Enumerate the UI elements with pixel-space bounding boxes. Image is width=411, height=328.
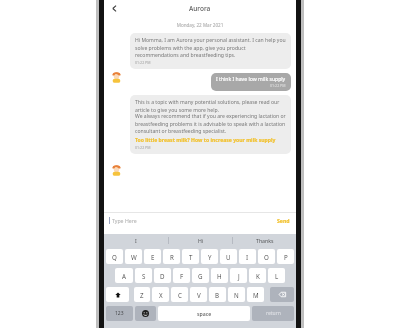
staticText: Hi — [198, 237, 204, 244]
staticText: Type Here — [112, 217, 276, 224]
button[interactable]: Hi Momma, I am Aurora your personal assi… — [130, 33, 291, 69]
staticText: V — [197, 291, 201, 299]
staticText: This is a topic with many potential solu… — [135, 99, 286, 113]
button[interactable]: U — [220, 249, 237, 264]
button[interactable]: This is a topic with many potential solu… — [130, 95, 291, 154]
staticText: F — [180, 272, 184, 280]
button[interactable]: N — [228, 287, 245, 302]
button[interactable]: D — [154, 268, 171, 283]
button[interactable]: Thanks — [233, 234, 296, 247]
staticText: K — [256, 272, 260, 280]
staticText: O — [264, 253, 269, 261]
button[interactable]: Too little breast milk? How to increase … — [135, 137, 276, 144]
button[interactable]: return — [252, 306, 294, 321]
staticText: M — [253, 291, 259, 299]
staticText: Aurora — [189, 4, 211, 13]
button[interactable]: Shift — [106, 287, 129, 302]
button[interactable]: F — [173, 268, 190, 283]
staticText: R — [170, 253, 174, 261]
button[interactable]: I — [104, 234, 168, 247]
staticText: We always recommend that if you are expe… — [135, 113, 286, 134]
button[interactable]: S — [135, 268, 152, 283]
button[interactable]: P — [277, 249, 294, 264]
staticText: G — [198, 272, 203, 280]
staticText: A — [122, 272, 126, 280]
staticText: space — [197, 310, 212, 317]
staticText: I — [246, 253, 249, 261]
staticText: C — [178, 291, 182, 299]
button[interactable]: Backspace — [270, 287, 294, 302]
staticText: Send — [277, 217, 290, 224]
button[interactable]: 123 — [106, 306, 133, 321]
staticText: B — [215, 291, 220, 299]
staticText: U — [226, 253, 231, 261]
staticText: return — [266, 310, 281, 317]
staticText: J — [238, 272, 240, 280]
button[interactable]: H — [211, 268, 228, 283]
staticText: E — [151, 253, 155, 261]
button[interactable]: A — [115, 268, 133, 283]
staticText: H — [217, 272, 222, 280]
button[interactable]: X — [152, 287, 169, 302]
staticText: Monday, 22 Mar 2021 — [109, 22, 291, 28]
button[interactable]: Send — [276, 217, 291, 224]
button[interactable]: L — [268, 268, 285, 283]
button[interactable]: Back — [107, 1, 121, 15]
staticText: N — [234, 291, 239, 299]
button[interactable]: B — [209, 287, 226, 302]
button[interactable]: C — [171, 287, 188, 302]
button[interactable]: Z — [134, 287, 150, 302]
staticText: T — [189, 253, 193, 261]
button[interactable]: R — [163, 249, 180, 264]
button[interactable]: O — [258, 249, 275, 264]
button[interactable]: Y — [201, 249, 218, 264]
staticText: 01:22 PM — [135, 60, 151, 65]
staticText: S — [142, 272, 146, 280]
button[interactable]: M — [247, 287, 264, 302]
staticText: Thanks — [256, 237, 274, 244]
button[interactable]: T — [182, 249, 199, 264]
staticText: P — [284, 253, 288, 261]
staticText: Z — [140, 291, 144, 299]
staticText: 01:22 PM — [270, 83, 286, 88]
button[interactable]: space — [158, 306, 250, 321]
button[interactable]: I think I have low milk supply — [211, 73, 291, 91]
button[interactable]: Hi — [169, 234, 232, 247]
button[interactable]: I — [239, 249, 256, 264]
staticText: Too little breast milk? How to increase … — [135, 137, 276, 144]
button[interactable]: J — [230, 268, 247, 283]
staticText: L — [275, 272, 279, 280]
staticText: 01:22 PM — [135, 145, 151, 150]
button[interactable]: V — [190, 287, 207, 302]
button[interactable]: W — [125, 249, 142, 264]
staticText: W — [131, 253, 137, 261]
staticText: X — [159, 291, 163, 299]
button[interactable]: G — [192, 268, 209, 283]
staticText: Hi Momma, I am Aurora your personal assi… — [135, 37, 286, 58]
button[interactable]: Emoji — [135, 306, 156, 321]
staticText: 123 — [115, 310, 124, 317]
staticText: I think I have low milk supply — [216, 76, 286, 83]
staticText: I — [135, 237, 137, 244]
staticText: Y — [208, 253, 212, 261]
button[interactable]: K — [249, 268, 266, 283]
button[interactable]: Q — [106, 249, 123, 264]
button[interactable]: E — [144, 249, 161, 264]
staticText: Q — [112, 253, 117, 261]
staticText: D — [160, 272, 165, 280]
